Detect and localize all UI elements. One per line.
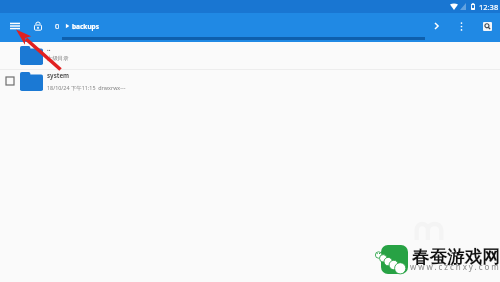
button[interactable]: Storage lock (29, 17, 47, 35)
button[interactable]: More options (452, 17, 470, 35)
staticText: 上级目录 (47, 55, 69, 62)
button[interactable]: system (0, 70, 500, 96)
staticText: 0 (55, 21, 60, 31)
button[interactable]: .. (0, 43, 500, 69)
staticText: 12:38 (479, 2, 499, 12)
staticText: .. (47, 44, 51, 52)
button[interactable]: Open navigation menu (5, 16, 25, 36)
staticText: 18/10/24 下午11:15 drwxrwx--- (47, 84, 126, 91)
button[interactable]: 0 (51, 13, 103, 39)
staticText: www.czchxy.com (410, 261, 500, 272)
staticText: 春蚕游戏网 (412, 246, 500, 268)
staticText: system (47, 71, 70, 79)
button[interactable]: Search (478, 17, 496, 35)
button[interactable]: Forward (427, 17, 445, 35)
staticText: backups (72, 22, 99, 31)
